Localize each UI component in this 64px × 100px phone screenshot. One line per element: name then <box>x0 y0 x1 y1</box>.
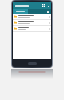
button[interactable] <box>13 9 28 14</box>
button[interactable]: More options <box>46 4 50 8</box>
button[interactable]: View mode <box>46 10 50 14</box>
button[interactable]: Home <box>28 62 37 65</box>
button[interactable] <box>13 26 51 31</box>
button[interactable] <box>13 14 51 19</box>
button[interactable]: Select <box>41 3 46 8</box>
button[interactable] <box>13 20 51 25</box>
